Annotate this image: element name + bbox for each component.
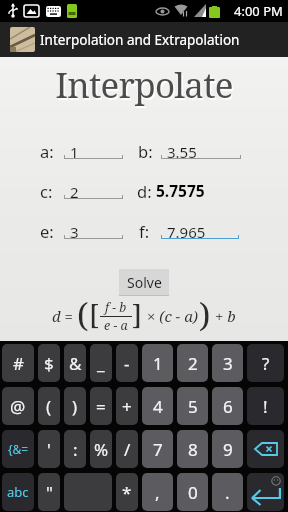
staticText: 1 — [153, 352, 163, 375]
staticText: [ — [89, 295, 100, 333]
staticText: Interpolate — [0, 61, 288, 109]
staticText: / — [124, 438, 131, 461]
button[interactable]: 9 — [212, 430, 243, 468]
staticText: . — [225, 481, 230, 504]
staticText: 4 — [153, 395, 163, 418]
staticText: 4:00 PM — [234, 2, 283, 20]
staticText: Interpolation and Extrapolation — [40, 31, 240, 49]
button[interactable]: 2 — [177, 344, 208, 382]
staticText: % — [94, 438, 109, 461]
staticText: ! — [263, 395, 268, 418]
button[interactable]: 5 — [177, 387, 208, 425]
button[interactable]: 1 — [142, 344, 173, 382]
staticText: # — [13, 352, 24, 375]
button[interactable] — [161, 218, 241, 240]
staticText: 7.965 — [167, 222, 206, 242]
staticText: 1 — [70, 142, 79, 162]
staticText: 3.55 — [167, 142, 197, 162]
staticText: d: — [137, 180, 152, 202]
button[interactable]: % — [90, 430, 112, 468]
button[interactable]: ? — [247, 344, 284, 382]
button[interactable]: - — [116, 344, 138, 382]
button[interactable]: $ — [38, 344, 60, 382]
staticText: ( — [77, 292, 89, 334]
button[interactable]: ! — [247, 387, 284, 425]
staticText: a: — [40, 140, 54, 162]
staticText: 8 — [188, 438, 198, 461]
staticText: + b — [211, 306, 236, 326]
staticText: 2 — [188, 352, 198, 375]
staticText: c: — [40, 180, 53, 202]
staticText: 5 — [188, 395, 198, 418]
staticText: = — [96, 395, 106, 418]
button[interactable]: 6 — [212, 387, 243, 425]
button[interactable]: , — [142, 473, 173, 511]
button[interactable]: ) — [64, 387, 86, 425]
staticText: ) — [199, 292, 211, 334]
button[interactable] — [64, 218, 123, 240]
staticText: + — [122, 395, 132, 418]
staticText: $ — [44, 352, 54, 375]
button[interactable] — [247, 430, 284, 468]
staticText: 0 — [188, 481, 198, 504]
staticText: * — [122, 481, 132, 504]
button[interactable]: + — [116, 387, 138, 425]
staticText: ? — [262, 352, 270, 375]
button[interactable]: abc — [2, 473, 34, 511]
button[interactable]: " — [38, 473, 60, 511]
button[interactable]: & — [64, 344, 86, 382]
button[interactable]: 3 — [212, 344, 243, 382]
staticText: f: — [139, 220, 150, 242]
button[interactable]: ( — [38, 387, 60, 425]
button[interactable]: ' — [38, 430, 60, 468]
staticText: _ — [97, 352, 105, 375]
staticText: f − b — [105, 299, 127, 316]
button[interactable]: @ — [2, 387, 34, 425]
staticText: ( — [46, 395, 52, 418]
button[interactable]: = — [90, 387, 112, 425]
button[interactable]: / — [116, 430, 138, 468]
button[interactable]: _ — [90, 344, 112, 382]
staticText: 6 — [223, 395, 233, 418]
button[interactable]: . — [212, 473, 243, 511]
button[interactable]: {&= — [2, 430, 34, 468]
staticText: " — [46, 481, 53, 504]
staticText: d = — [52, 306, 77, 326]
staticText: & — [69, 352, 82, 375]
staticText: - — [124, 352, 130, 375]
staticText: e − a — [104, 317, 128, 334]
staticText: ] — [132, 295, 143, 333]
staticText: 2 — [70, 182, 79, 202]
button[interactable] — [64, 473, 112, 511]
button[interactable] — [64, 138, 123, 160]
button[interactable]: * — [116, 473, 138, 511]
staticText: Solve — [127, 273, 162, 292]
button[interactable]: Solve — [119, 269, 169, 295]
button[interactable]: 4 — [142, 387, 173, 425]
button[interactable]: 8 — [177, 430, 208, 468]
staticText: ) — [72, 395, 78, 418]
staticText: 9 — [223, 438, 233, 461]
button[interactable]: 0 — [177, 473, 208, 511]
button[interactable] — [247, 473, 284, 511]
staticText: e: — [40, 220, 54, 242]
button[interactable] — [64, 178, 123, 200]
staticText: ' — [47, 438, 51, 461]
staticText: 3 — [70, 222, 79, 242]
staticText: , — [155, 481, 160, 504]
staticText: @ — [10, 395, 26, 418]
staticText: 3 — [223, 352, 233, 375]
staticText: {&= — [8, 441, 29, 457]
staticText: 5.7575 — [156, 180, 205, 201]
button[interactable] — [161, 138, 241, 160]
staticText: 7 — [153, 438, 163, 461]
button[interactable]: 7 — [142, 430, 173, 468]
staticText: : — [73, 438, 78, 461]
staticText: b: — [138, 140, 153, 162]
staticText: abc — [7, 483, 29, 501]
button[interactable]: # — [2, 344, 34, 382]
staticText: × (c − a) — [143, 306, 199, 326]
button[interactable]: : — [64, 430, 86, 468]
